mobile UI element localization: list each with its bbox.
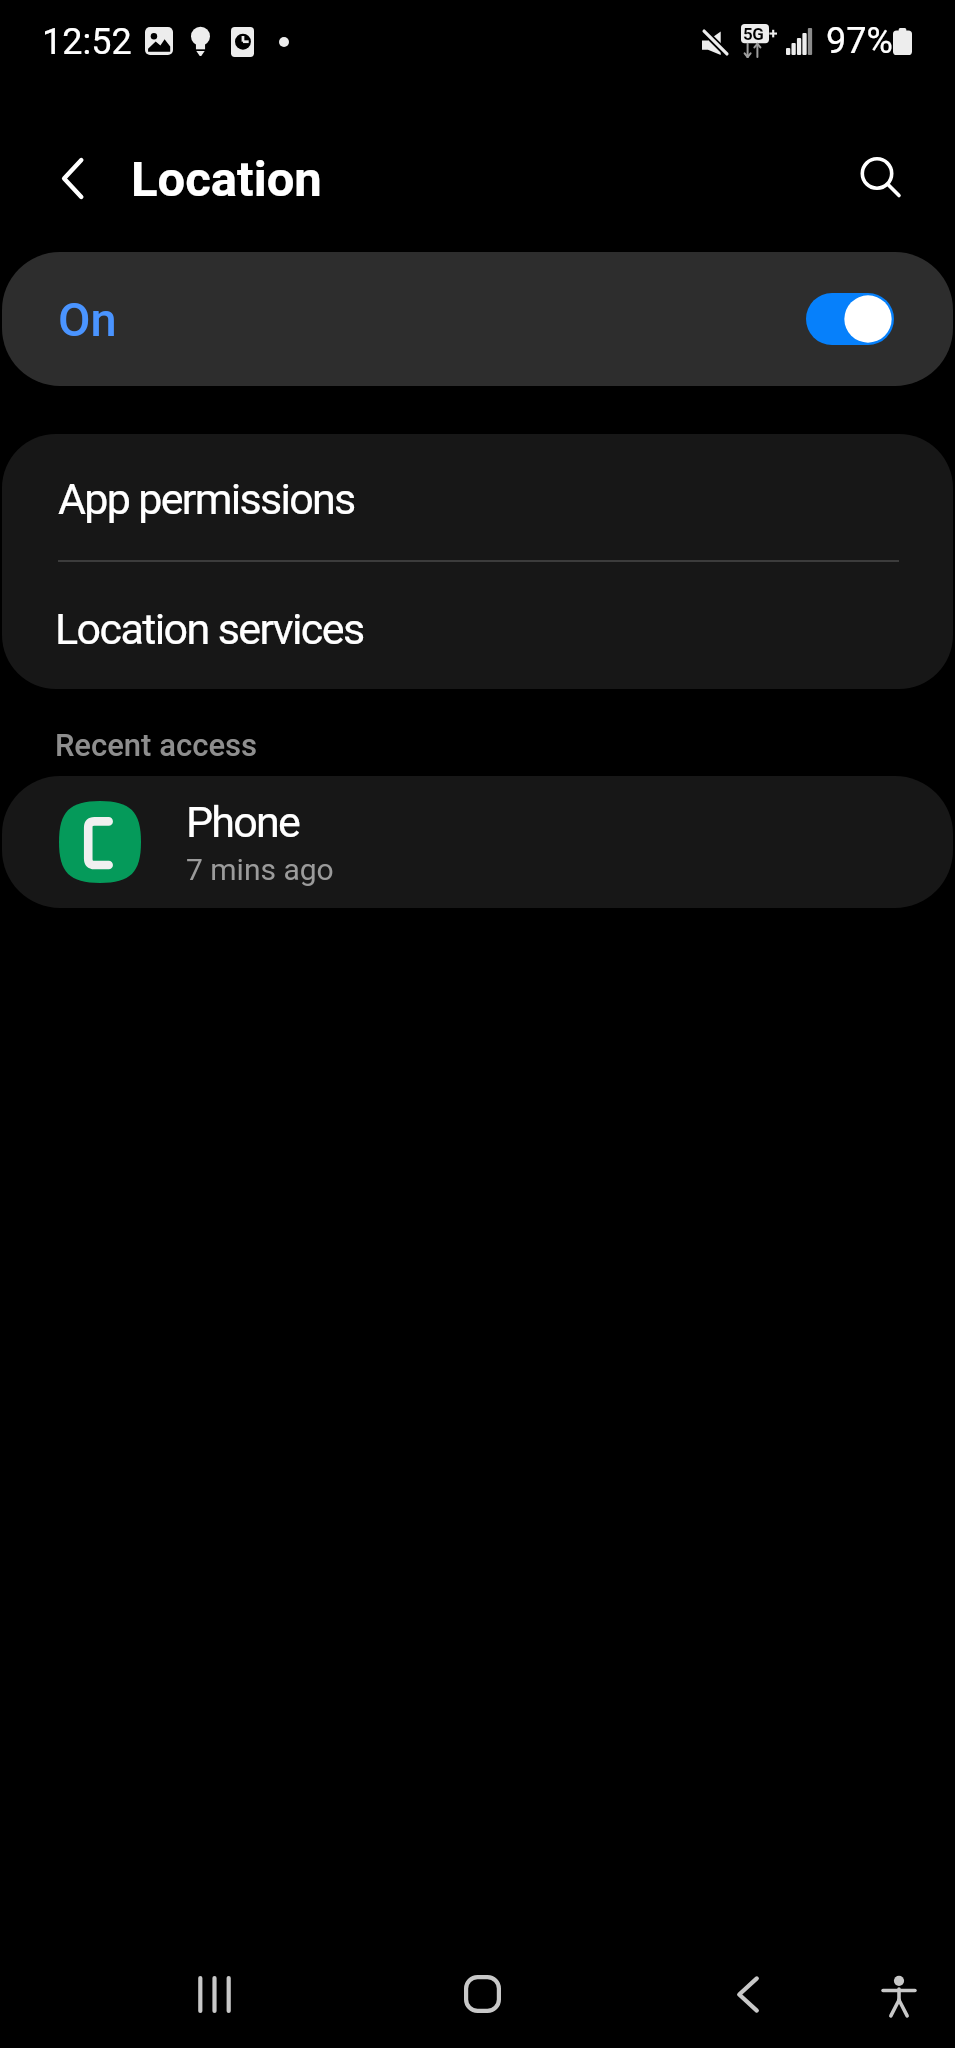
button[interactable]: Location services <box>2 562 953 689</box>
staticText: Recent access <box>55 727 258 763</box>
staticText: 12:52 <box>42 21 132 63</box>
button[interactable]: Search <box>834 131 920 217</box>
staticText: Location <box>131 151 322 208</box>
button[interactable]: Navigate up <box>29 135 115 221</box>
button[interactable]: App permissions <box>2 434 953 560</box>
staticText: 7 mins ago <box>186 852 334 887</box>
button[interactable]: Home <box>436 1948 528 2040</box>
button[interactable]: On <box>2 252 953 386</box>
staticText: Location services <box>55 604 364 654</box>
button[interactable]: Recent apps <box>168 1948 260 2040</box>
staticText: 97% <box>826 20 893 62</box>
staticText: 5G <box>743 24 764 44</box>
button[interactable]: Back <box>702 1948 794 2040</box>
button[interactable]: Accessibility <box>853 1951 945 2043</box>
button[interactable]: Phone <box>2 776 953 908</box>
staticText: Phone <box>186 797 299 847</box>
staticText: App permissions <box>58 474 355 524</box>
staticText: On <box>58 292 117 347</box>
